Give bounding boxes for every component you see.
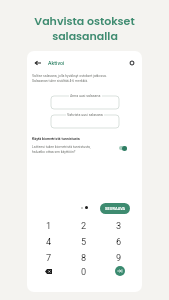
staticText: 1 — [46, 220, 52, 231]
button[interactable]: 8 — [76, 250, 92, 264]
button[interactable]: 5 — [76, 234, 92, 248]
staticText: 3 — [116, 220, 122, 231]
staticText: 9 — [116, 252, 122, 263]
button[interactable]: Use biometric authentication — [118, 144, 127, 152]
button[interactable]: 0 — [76, 264, 92, 278]
button[interactable]: Backspace — [40, 264, 56, 278]
button[interactable]: 9 — [111, 250, 127, 264]
staticText: 8 — [81, 252, 87, 263]
staticText: salasanalla — [52, 28, 118, 43]
button[interactable]: Anna uusi salasana — [51, 96, 119, 109]
button[interactable]: 6 — [111, 234, 127, 248]
staticText: 5 — [81, 236, 87, 247]
staticText: Anna uusi salasana — [70, 94, 101, 98]
button[interactable]: 3 — [111, 218, 127, 232]
button[interactable]: SEURAAVA — [100, 203, 130, 214]
staticText: 2 — [81, 220, 87, 231]
button[interactable]: Vahvista uusi salasana — [51, 115, 119, 128]
button[interactable]: 2 — [76, 218, 92, 232]
button[interactable]: 4 — [41, 234, 57, 248]
staticText: Salasanan tulee sisältää 4-6 merkkiä. — [32, 79, 88, 83]
staticText: 0 — [81, 266, 87, 277]
staticText: 7 — [46, 252, 52, 263]
staticText: Vahvista ostokset — [34, 13, 135, 28]
staticText: Aktivoi — [48, 60, 65, 66]
button[interactable]: 7 — [41, 250, 57, 264]
staticText: SEURAAVA — [105, 206, 126, 211]
button[interactable]: Confirm — [112, 264, 128, 278]
staticText: Käytä biometristä tunnistusta — [32, 137, 80, 141]
button[interactable]: 1 — [41, 218, 57, 232]
button[interactable]: Settings — [127, 58, 136, 67]
staticText: Vahvista uusi salasana — [67, 113, 103, 117]
staticText: 6 — [116, 236, 122, 247]
staticText: Laitteesi tukee biometristä tunnistusta, — [32, 145, 91, 149]
button[interactable]: Aktivoi — [48, 60, 65, 66]
button[interactable]: Back — [33, 58, 42, 67]
staticText: 4 — [46, 236, 52, 247]
staticText: Valitse salasana, jolla hyväksyt ostokse… — [32, 74, 107, 78]
staticText: haluatko ottaa sen käyttöön? — [32, 150, 76, 154]
